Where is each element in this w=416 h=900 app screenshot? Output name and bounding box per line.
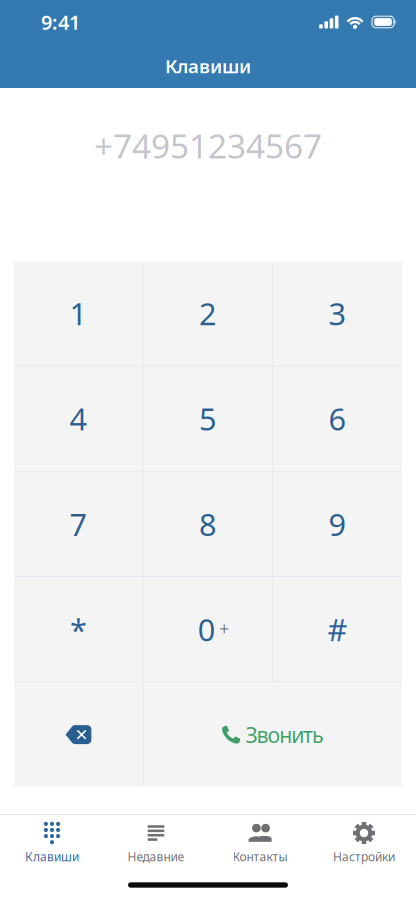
- staticText: 9: [329, 504, 347, 544]
- button[interactable]: Клавиши: [0, 816, 104, 868]
- staticText: 9:41: [41, 9, 80, 35]
- staticText: #: [328, 609, 348, 650]
- staticText: Звонить: [246, 720, 324, 749]
- staticText: Недавние: [127, 848, 184, 864]
- button[interactable]: 4: [14, 366, 143, 471]
- button[interactable]: 7: [14, 472, 143, 576]
- button[interactable]: 2: [144, 261, 272, 366]
- button[interactable]: 9: [273, 472, 402, 576]
- button[interactable]: 5: [144, 366, 272, 471]
- staticText: Настройки: [333, 848, 395, 864]
- button[interactable]: Настройки: [312, 816, 416, 868]
- button[interactable]: *: [14, 577, 143, 681]
- staticText: +: [219, 617, 229, 640]
- button[interactable]: 6: [273, 366, 402, 471]
- button[interactable]: 0: [144, 577, 272, 681]
- staticText: 6: [329, 398, 347, 439]
- staticText: 4: [69, 398, 87, 439]
- staticText: Клавиши: [165, 54, 251, 78]
- staticText: Клавиши: [25, 848, 79, 864]
- staticText: 2: [199, 293, 217, 334]
- staticText: 8: [199, 504, 217, 544]
- staticText: 1: [69, 293, 87, 334]
- button[interactable]: Звонить: [144, 682, 401, 787]
- button[interactable]: Контакты: [208, 816, 312, 868]
- button[interactable]: 1: [14, 261, 143, 366]
- staticText: Контакты: [232, 848, 287, 864]
- staticText: 7: [69, 504, 87, 544]
- button[interactable]: 3: [273, 261, 402, 366]
- button[interactable]: Удалить: [15, 682, 143, 787]
- button[interactable]: Недавние: [104, 816, 208, 868]
- button[interactable]: 8: [144, 472, 272, 576]
- staticText: +74951234567: [94, 123, 322, 168]
- button[interactable]: #: [273, 577, 402, 681]
- staticText: 3: [329, 293, 347, 334]
- staticText: 5: [199, 398, 217, 439]
- staticText: *: [70, 609, 87, 650]
- staticText: 0: [198, 609, 216, 650]
